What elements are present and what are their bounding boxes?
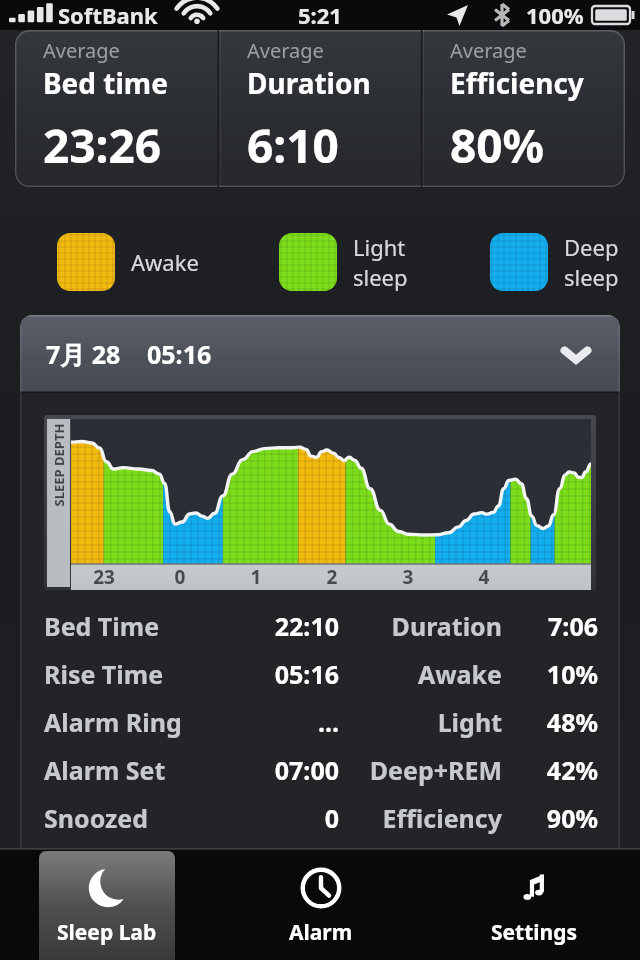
staticText: sleep [353, 262, 408, 292]
staticText: 4 [470, 564, 498, 590]
staticText: 6:10 [247, 114, 339, 177]
button[interactable]: 7月 28 [20, 315, 620, 393]
staticText: SoftBank [58, 0, 158, 30]
staticText: 7月 28 [46, 337, 121, 371]
staticText: Settings [491, 918, 578, 947]
button[interactable]: Light [279, 232, 408, 292]
staticText: 23:26 [43, 114, 162, 177]
staticText: 90% [518, 801, 598, 835]
button[interactable]: Sleep Lab [39, 851, 175, 960]
staticText: Average [43, 37, 120, 64]
button[interactable]: Settings [466, 851, 602, 960]
staticText: Sleep Lab [57, 918, 157, 947]
staticText: 3 [394, 564, 422, 590]
staticText: Alarm Ring [44, 705, 209, 739]
staticText: Snoozed [44, 801, 209, 835]
button[interactable]: Awake [57, 233, 199, 291]
staticText: Awake [339, 657, 502, 691]
staticText: 100% [526, 0, 584, 30]
staticText: Bed Time [44, 609, 209, 643]
staticText: Alarm [289, 918, 353, 947]
button[interactable]: Average [219, 30, 422, 187]
staticText: 07:00 [209, 753, 339, 787]
staticText: 22:10 [209, 609, 339, 643]
staticText: Light [339, 705, 502, 739]
staticText: SLEEP DEPTH [50, 415, 68, 515]
staticText: 48% [518, 705, 598, 739]
staticText: Light [353, 232, 406, 262]
staticText: 10% [518, 657, 598, 691]
other: Alarm [297, 865, 345, 913]
other: Settings [511, 865, 559, 913]
staticText: Average [247, 37, 324, 64]
staticText: 05:16 [147, 337, 212, 371]
staticText: 23 [90, 564, 118, 590]
staticText: Efficiency [450, 64, 584, 102]
staticText: Duration [339, 609, 502, 643]
staticText: 5:21 [298, 0, 342, 30]
staticText: 80% [450, 114, 545, 177]
other: Collapse [558, 336, 594, 372]
staticText: Deep [564, 232, 619, 262]
staticText: Average [450, 37, 527, 64]
staticText: 2 [318, 564, 346, 590]
staticText: Alarm Set [44, 753, 209, 787]
staticText: Efficiency [339, 801, 502, 835]
staticText: Duration [247, 64, 371, 102]
staticText: Bed time [43, 64, 168, 102]
button[interactable]: Average [15, 30, 219, 187]
staticText: Awake [131, 247, 199, 277]
button[interactable]: Alarm [253, 851, 389, 960]
button[interactable]: Deep [490, 232, 619, 292]
staticText: 0 [166, 564, 194, 590]
staticText: ... [209, 705, 339, 739]
other: Sleep Lab [83, 865, 131, 913]
staticText: sleep [564, 262, 619, 292]
staticText: 7:06 [518, 609, 598, 643]
staticText: Deep+REM [339, 753, 502, 787]
staticText: 05:16 [209, 657, 339, 691]
button[interactable]: Average [422, 30, 625, 187]
staticText: 42% [518, 753, 598, 787]
staticText: 1 [242, 564, 270, 590]
staticText: Rise Time [44, 657, 209, 691]
staticText: 0 [209, 801, 339, 835]
